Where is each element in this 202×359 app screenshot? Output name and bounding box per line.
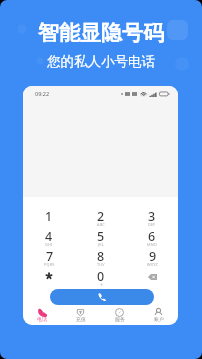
staticText: 6	[148, 228, 156, 245]
button[interactable]: 8	[79, 248, 123, 270]
staticText: 3	[148, 208, 156, 225]
staticText: GHI	[45, 242, 53, 247]
staticText: 您的私人小号电话	[47, 53, 155, 70]
button[interactable]: 4	[27, 228, 71, 250]
staticText: 8	[97, 248, 105, 265]
staticText: 4	[45, 228, 53, 245]
staticText: 9	[149, 248, 157, 265]
button[interactable]	[27, 266, 71, 288]
staticText: +	[100, 282, 103, 287]
button[interactable]: 电话	[23, 306, 61, 325]
staticText: 电话	[37, 316, 47, 322]
button[interactable]: 账户	[139, 306, 178, 325]
button[interactable]: Backspace	[139, 268, 165, 286]
button[interactable]: 9	[130, 248, 174, 270]
button[interactable]: 6	[130, 228, 174, 250]
staticText: PQRS	[44, 262, 55, 267]
staticText: 2	[97, 208, 105, 225]
staticText: DEF	[148, 222, 156, 227]
staticText: 服务	[115, 316, 125, 322]
staticText: TUV	[97, 262, 105, 267]
staticText: 账户	[154, 316, 164, 322]
staticText: 7	[46, 248, 54, 265]
staticText: 5	[97, 228, 105, 245]
staticText: 0	[97, 268, 105, 285]
button[interactable]: Call	[50, 289, 154, 305]
staticText: 09:22	[35, 90, 50, 97]
button[interactable]: 充值	[61, 306, 100, 325]
button[interactable]: 2	[79, 208, 123, 230]
button[interactable]: 5	[79, 228, 123, 250]
staticText: ABC	[97, 222, 105, 227]
staticText: 智能显隐号码	[38, 20, 164, 46]
button[interactable]: 3	[130, 208, 174, 230]
button[interactable]: 服务	[100, 306, 139, 325]
staticText: WXYZ	[147, 262, 158, 267]
staticText: MNO	[147, 242, 157, 247]
staticText: 1	[45, 208, 53, 225]
button[interactable]: 7	[27, 248, 71, 270]
staticText: JKL	[98, 242, 104, 247]
button[interactable]: 0	[79, 268, 123, 290]
staticText: 充值	[76, 316, 86, 322]
button[interactable]: 1	[27, 208, 71, 230]
